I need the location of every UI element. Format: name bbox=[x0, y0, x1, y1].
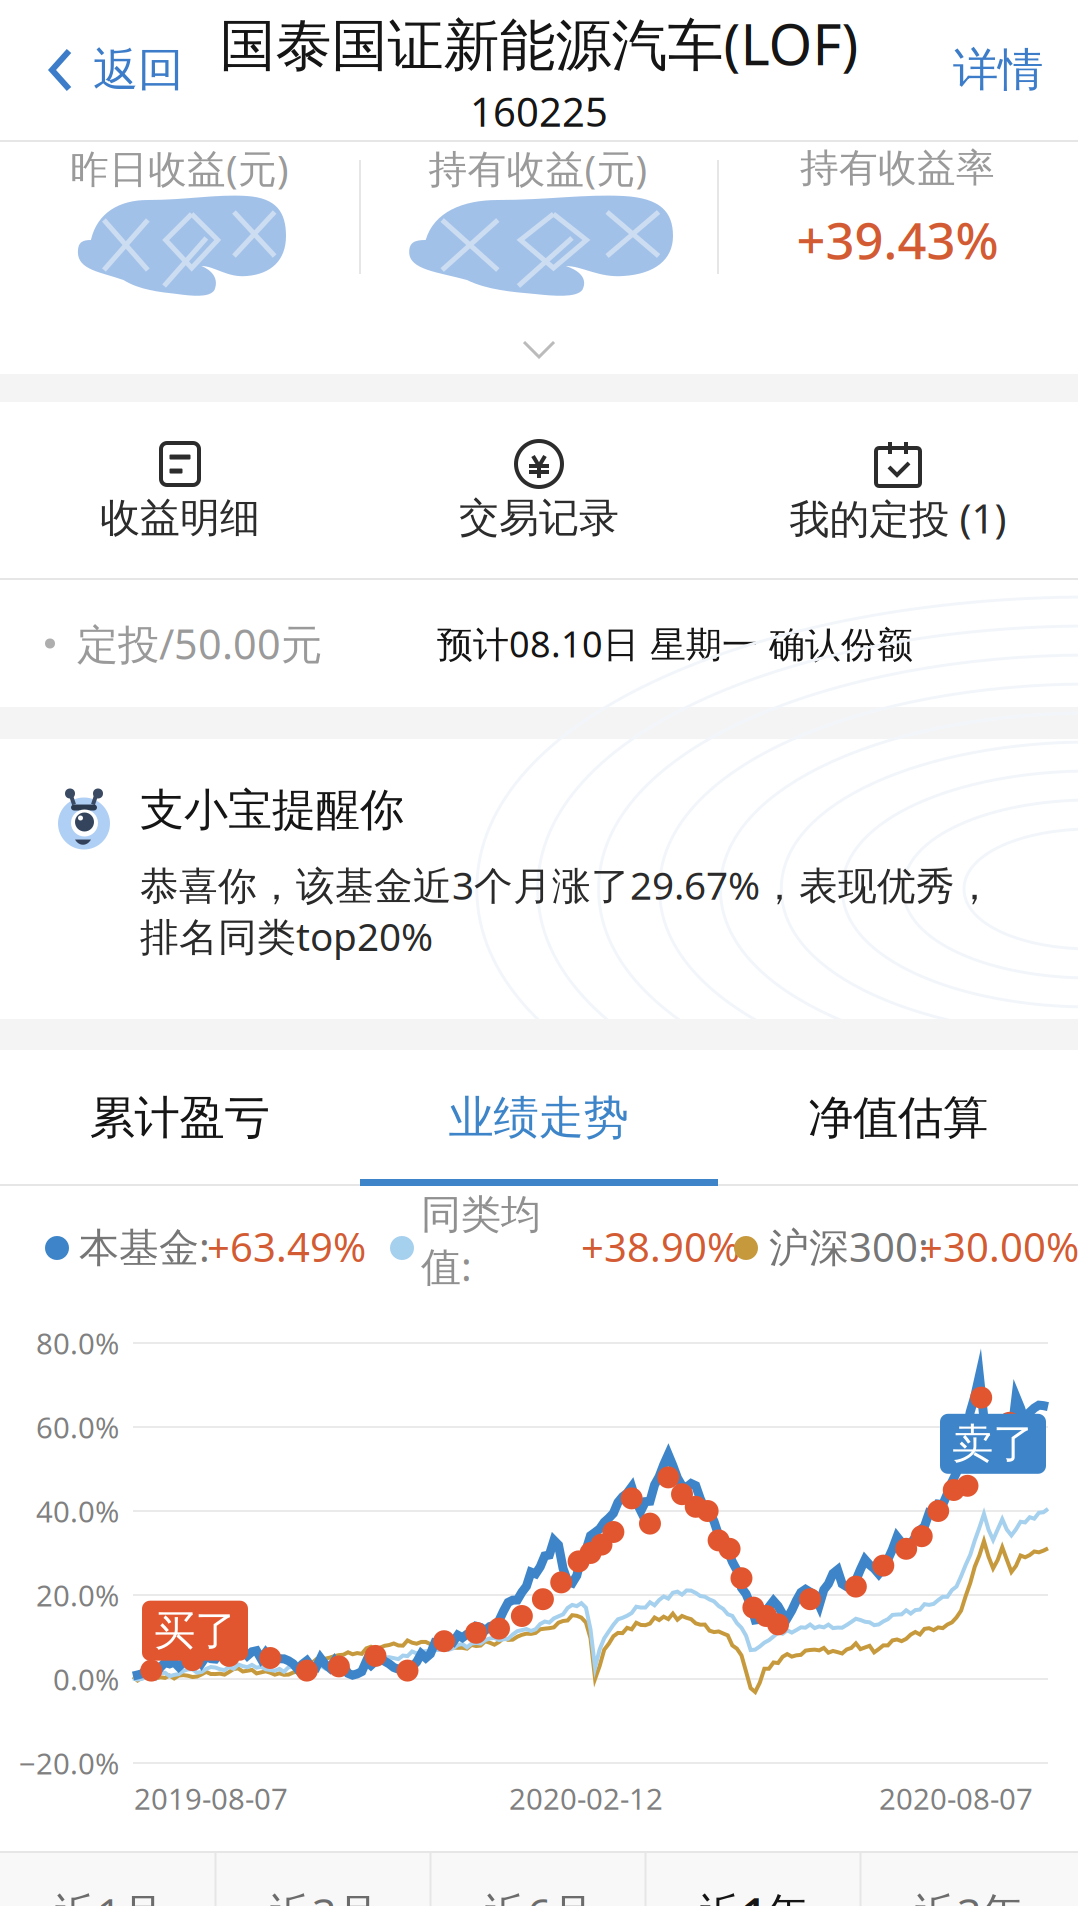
staticText: 定投/50.00元 bbox=[77, 616, 322, 671]
staticText: 预计08.10日 星期一 确认份额 bbox=[437, 620, 913, 667]
button[interactable]: 近1年 bbox=[646, 1853, 861, 1906]
staticText: 近1月 bbox=[54, 1884, 164, 1906]
staticText: 2019-08-07 bbox=[134, 1779, 288, 1818]
button[interactable]: 交易记录 bbox=[359, 402, 718, 614]
staticText: 60.0% bbox=[36, 1407, 119, 1446]
button[interactable]: 展开 bbox=[439, 328, 639, 372]
staticText: 近1年 bbox=[699, 1884, 809, 1906]
button[interactable]: 返回 bbox=[0, 0, 183, 140]
staticText: 业绩走势 bbox=[448, 1090, 628, 1146]
staticText: +38.90% bbox=[581, 1220, 740, 1273]
staticText: 2020-02-12 bbox=[509, 1779, 663, 1818]
staticText: 2020-08-07 bbox=[879, 1779, 1033, 1818]
staticText: 收益明细 bbox=[100, 493, 260, 542]
button[interactable]: 业绩走势 bbox=[359, 1050, 718, 1186]
button[interactable]: 详情 bbox=[953, 0, 1078, 140]
button[interactable]: 累计盈亏 bbox=[0, 1050, 359, 1186]
button[interactable]: 收益明细 bbox=[0, 402, 359, 614]
staticText: 持有收益(元) bbox=[428, 142, 647, 194]
button[interactable]: 定投/50.00元 bbox=[0, 580, 1078, 707]
button[interactable]: 我的定投 (1) bbox=[718, 402, 1077, 614]
staticText: 沪深300: bbox=[769, 1220, 929, 1273]
staticText: 买了 bbox=[154, 1605, 236, 1656]
staticText: 持有收益率 bbox=[800, 144, 995, 192]
staticText: 国泰国证新能源汽车(LOF) bbox=[219, 6, 858, 81]
button[interactable]: 近3年 bbox=[861, 1853, 1076, 1906]
staticText: +39.43% bbox=[796, 206, 998, 273]
staticText: 同类均值: bbox=[421, 1190, 541, 1292]
staticText: 20.0% bbox=[36, 1575, 119, 1614]
staticText: 支小宝提醒你 bbox=[140, 783, 404, 837]
button[interactable]: 近1月 bbox=[1, 1853, 216, 1906]
staticText: +63.49% bbox=[207, 1220, 366, 1273]
staticText: 净值估算 bbox=[808, 1090, 988, 1146]
button[interactable]: 净值估算 bbox=[718, 1050, 1078, 1186]
button[interactable]: 近3月 bbox=[216, 1853, 431, 1906]
button[interactable]: 近6月 bbox=[431, 1853, 646, 1906]
staticText: +30.00% bbox=[920, 1220, 1078, 1273]
staticText: 160225 bbox=[470, 85, 608, 138]
staticText: −20.0% bbox=[19, 1743, 119, 1782]
staticText: 本基金: bbox=[79, 1220, 210, 1273]
staticText: 累计盈亏 bbox=[89, 1090, 269, 1146]
staticText: 返回 bbox=[93, 42, 183, 98]
staticText: 详情 bbox=[953, 42, 1043, 98]
staticText: 0.0% bbox=[53, 1659, 119, 1698]
staticText: 卖了 bbox=[952, 1418, 1034, 1469]
staticText: 交易记录 bbox=[459, 493, 619, 542]
staticText: 恭喜你，该基金近3个月涨了29.67%，表现优秀，排名同类top20% bbox=[140, 859, 994, 962]
staticText: 近3年 bbox=[914, 1884, 1024, 1906]
staticText: 40.0% bbox=[36, 1491, 119, 1530]
staticText: 80.0% bbox=[36, 1323, 119, 1362]
staticText: 我的定投 (1) bbox=[789, 491, 1006, 544]
staticText: 近3月 bbox=[269, 1884, 379, 1906]
staticText: 昨日收益(元) bbox=[70, 142, 289, 194]
staticText: 近6月 bbox=[484, 1884, 594, 1906]
